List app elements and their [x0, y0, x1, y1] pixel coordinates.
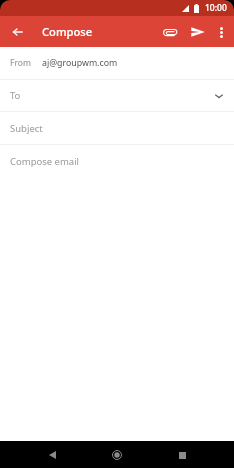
staticText: Compose email	[10, 155, 80, 168]
button[interactable]: Back	[5, 20, 29, 44]
staticText: From	[10, 57, 31, 69]
staticText: 10:00	[205, 2, 227, 14]
button[interactable]: More options	[209, 20, 234, 45]
button[interactable]: From	[0, 47, 234, 79]
staticText: Subject	[10, 122, 43, 135]
button[interactable]: Send	[187, 19, 209, 45]
button[interactable]: Subject	[0, 112, 234, 144]
button[interactable]: Recent apps	[171, 444, 193, 466]
button[interactable]: Home	[106, 444, 128, 466]
staticText: Compose	[42, 24, 93, 39]
staticText: To	[10, 89, 21, 102]
button[interactable]: To	[0, 80, 234, 111]
button[interactable]: Attach file	[152, 20, 187, 44]
button[interactable]: Compose email	[0, 145, 234, 177]
button[interactable]: Back	[41, 444, 63, 466]
staticText: aj@groupwm.com	[42, 57, 118, 69]
